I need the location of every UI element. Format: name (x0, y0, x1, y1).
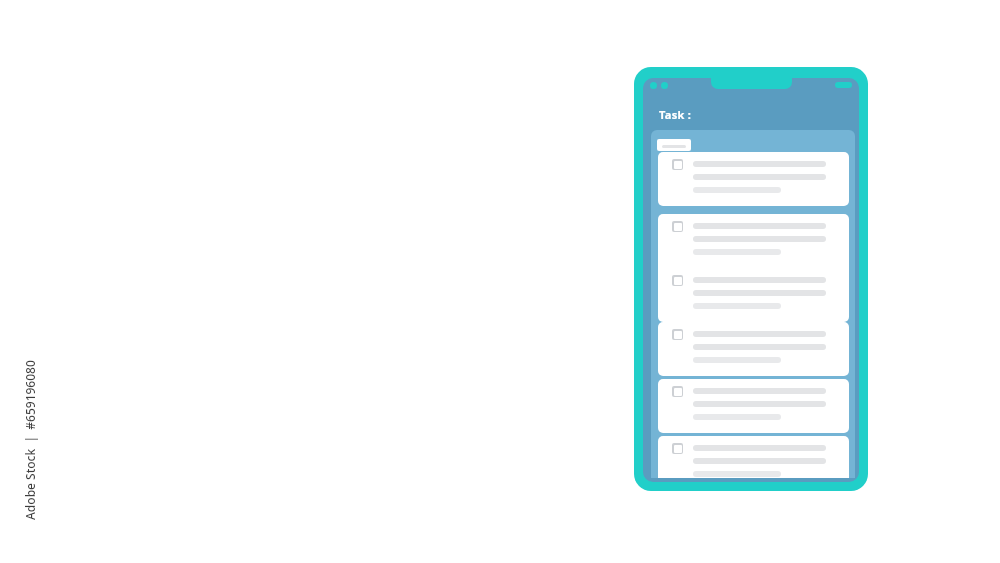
button[interactable]: Toggle task complete (672, 221, 683, 232)
button[interactable]: Filter tab (657, 139, 691, 151)
button[interactable]: Toggle task complete (672, 329, 683, 340)
button[interactable]: Toggle task complete (672, 386, 683, 397)
button[interactable]: Task item (658, 379, 849, 433)
button[interactable]: Task item (658, 322, 849, 376)
button[interactable]: Task item (658, 436, 849, 478)
button[interactable]: Task item (658, 214, 849, 322)
button[interactable]: Toggle task complete (672, 275, 683, 286)
button[interactable]: Toggle task complete (672, 159, 683, 170)
button[interactable]: Task item (658, 152, 849, 206)
button[interactable]: Toggle task complete (672, 443, 683, 454)
staticText: Task : (659, 107, 692, 122)
